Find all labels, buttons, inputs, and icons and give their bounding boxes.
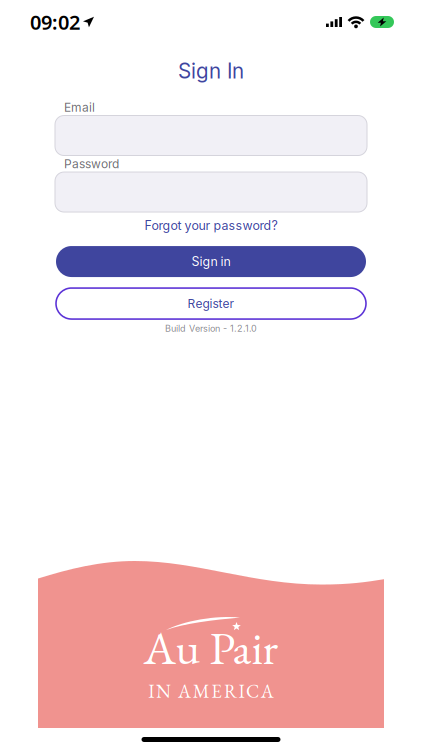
staticText: Forgot your password?	[144, 218, 277, 233]
staticText: 09:02	[30, 9, 80, 35]
button[interactable]: Register	[56, 288, 366, 319]
staticText: Au Pair	[143, 617, 278, 678]
button[interactable]: Sign in	[56, 246, 366, 277]
staticText: Register	[187, 296, 234, 311]
staticText: Sign in	[191, 254, 230, 269]
staticText: Password	[64, 156, 119, 171]
staticText: Build Version - 1.2.1.0	[165, 323, 257, 334]
button[interactable]: Forgot your password?	[134, 215, 287, 236]
staticText: IN AMERICA	[148, 679, 274, 703]
staticText: Email	[64, 100, 95, 114]
staticText: Sign In	[178, 58, 244, 83]
